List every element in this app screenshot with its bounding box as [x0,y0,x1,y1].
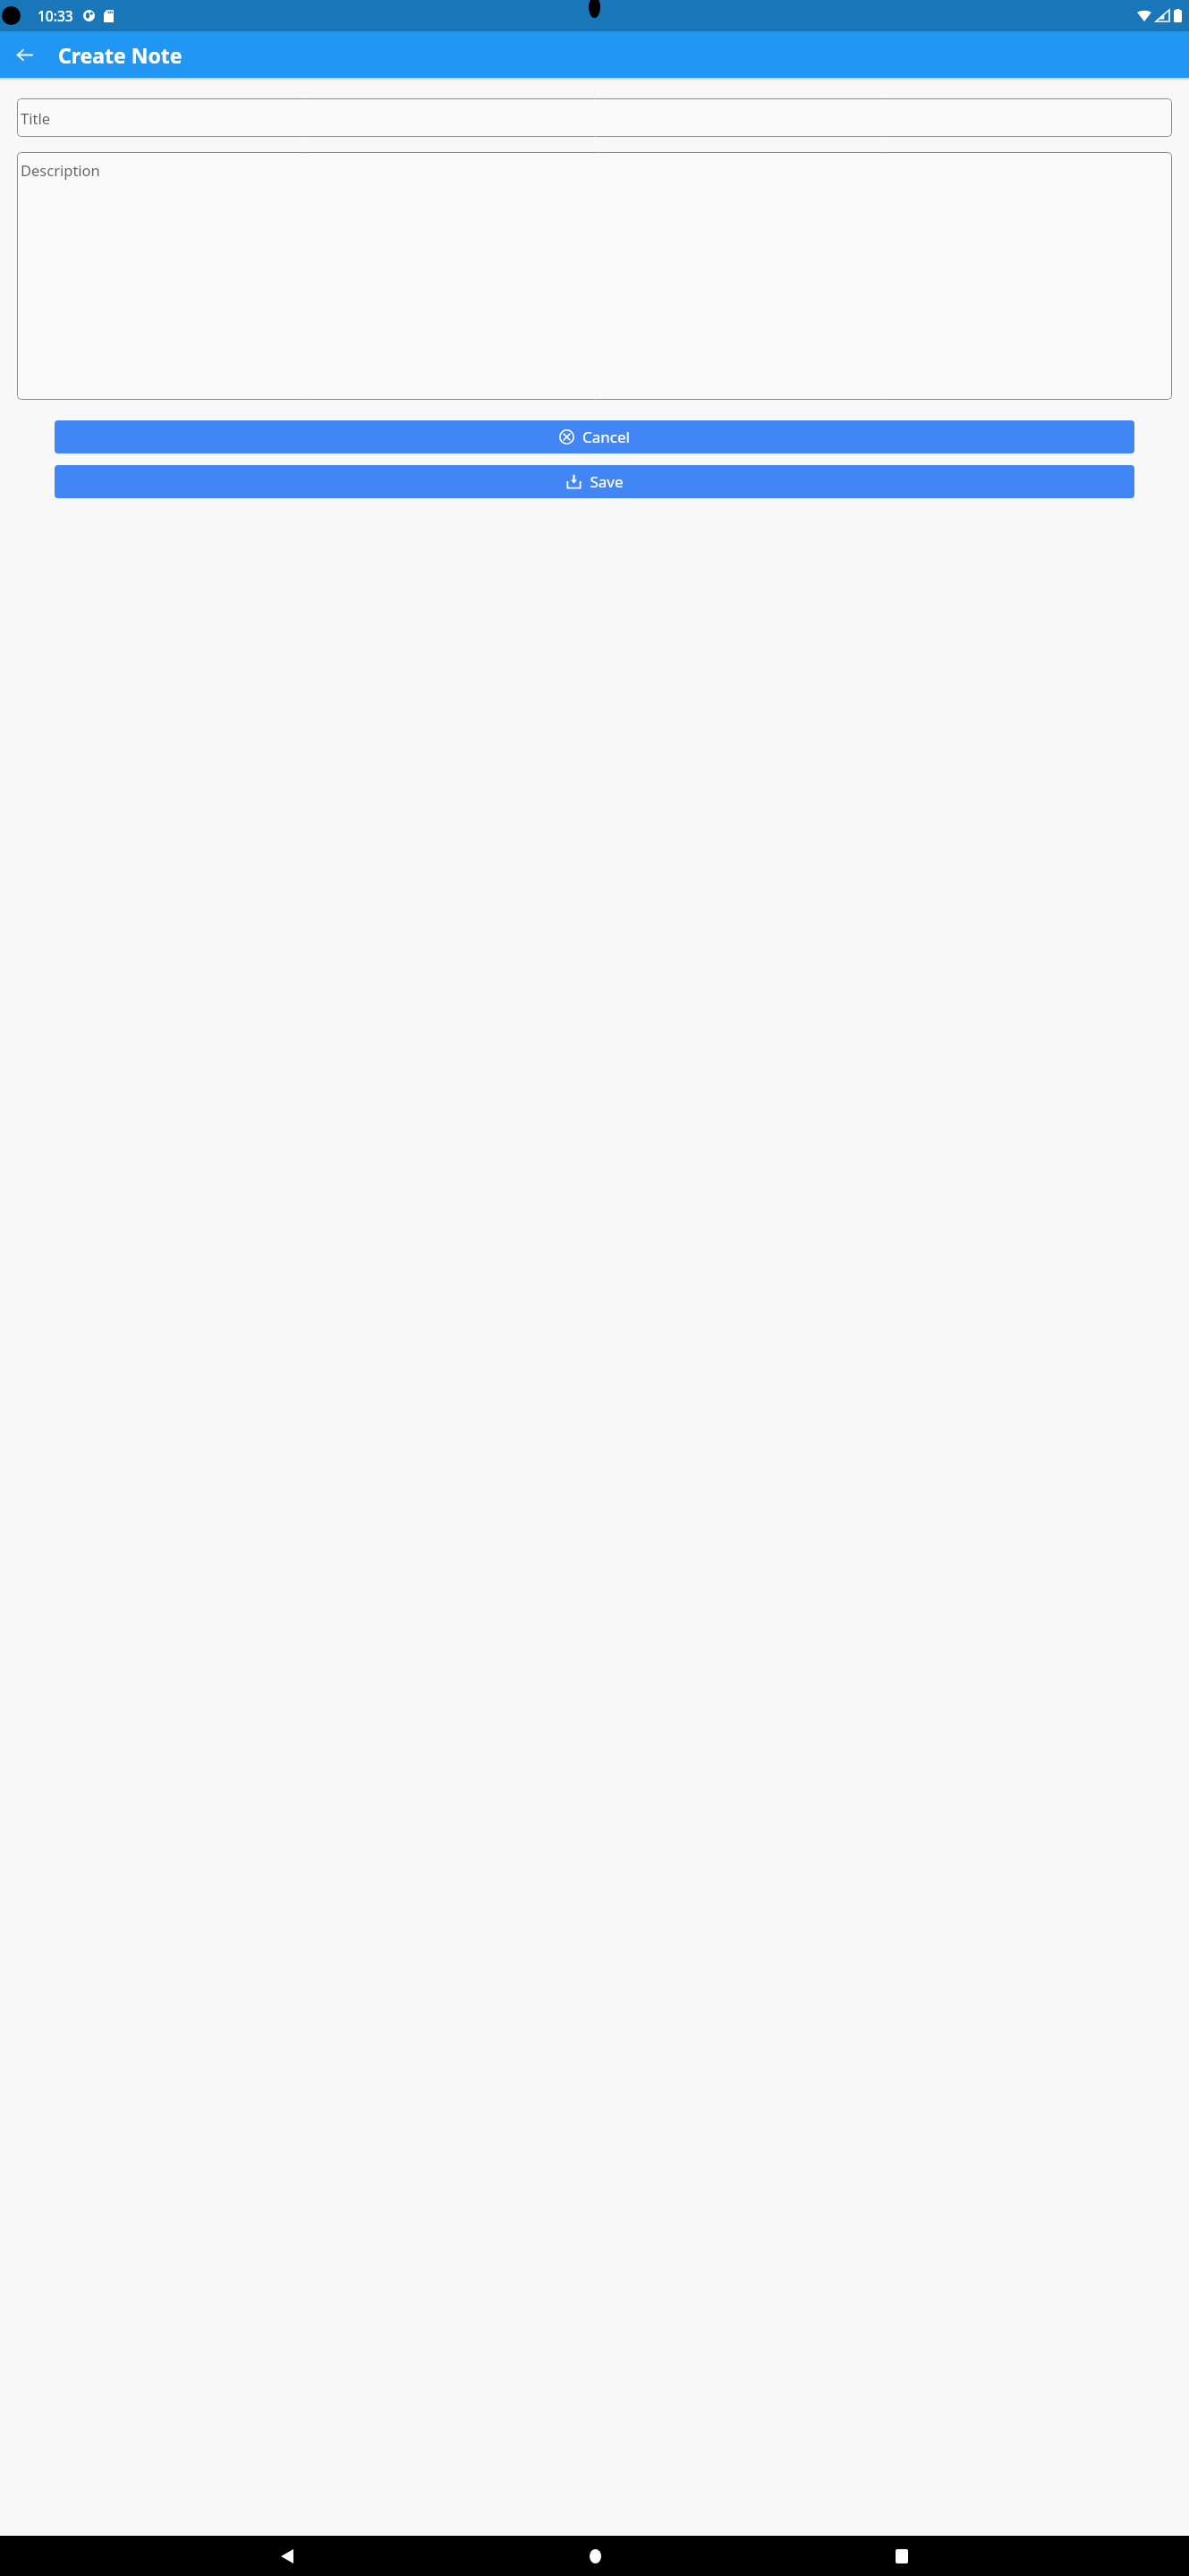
staticText: Title [21,108,50,128]
button[interactable]: Home [575,2537,615,2576]
button[interactable]: Recent apps [882,2537,921,2576]
button[interactable]: Description [17,152,1172,400]
button[interactable]: Save [55,465,1134,498]
staticText: 10:33 [38,6,73,25]
button[interactable]: Back [5,36,43,73]
staticText: Create Note [58,41,183,69]
button[interactable]: Cancel [55,420,1134,453]
staticText: Save [590,471,624,492]
button[interactable]: Back [268,2537,307,2576]
button[interactable]: Title [17,98,1172,137]
staticText: Description [21,160,100,180]
staticText: Cancel [582,427,630,447]
